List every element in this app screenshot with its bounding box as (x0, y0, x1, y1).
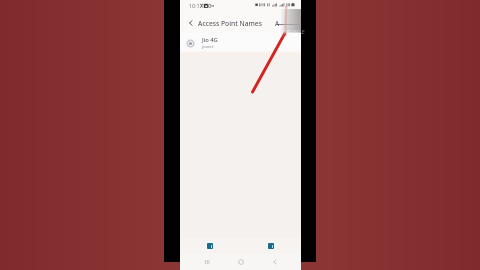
staticText: MOBILE (284, 28, 305, 35)
staticText: A (275, 19, 280, 27)
button[interactable]: A (273, 16, 299, 30)
staticText: Access Point Names (198, 19, 262, 28)
staticText: Jio 4G (202, 36, 218, 44)
staticText: 10:17 (189, 2, 203, 9)
staticText: jionet (202, 44, 214, 50)
button[interactable]: Recent apps (200, 255, 214, 269)
button[interactable]: Home (234, 255, 248, 269)
button[interactable]: Jio 4G (180, 33, 301, 50)
button[interactable]: Navigate up (183, 16, 197, 30)
button[interactable]: Back (268, 255, 282, 269)
